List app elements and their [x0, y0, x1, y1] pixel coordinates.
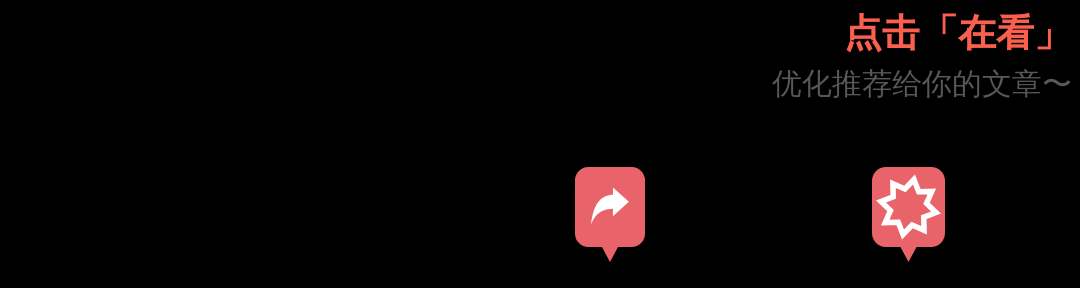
staticText: 优化推荐给你的文章〜 — [772, 65, 1072, 103]
button[interactable]: Wow — [872, 167, 945, 262]
button[interactable]: Share — [575, 167, 645, 262]
button[interactable]: 点击「在看」 — [844, 9, 1072, 57]
